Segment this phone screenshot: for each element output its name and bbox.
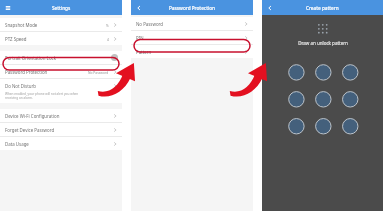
button[interactable]: Pattern <box>131 45 253 58</box>
button[interactable]: Back <box>262 0 277 15</box>
button[interactable]: PIN <box>131 31 253 44</box>
staticText: Portrait Orientation Lock <box>5 55 57 61</box>
button[interactable]: Do Not Disturb <box>0 79 122 92</box>
staticText: 4 <box>107 37 109 41</box>
button[interactable]: Back <box>131 0 146 15</box>
button[interactable]: No Password <box>131 17 253 30</box>
staticText: When enabled, your phone will not alert … <box>5 92 79 100</box>
staticText: Device Wi-Fi Configuration <box>5 113 60 119</box>
staticText: Settings <box>52 5 71 11</box>
staticText: Data Usage <box>5 141 29 147</box>
button[interactable]: Forget Device Password <box>0 123 122 136</box>
staticText: Forget Device Password <box>5 127 55 133</box>
button[interactable]: Portrait Orientation Lock <box>0 51 122 64</box>
staticText: Draw an unlock pattern <box>298 40 348 46</box>
button[interactable]: Pattern grid <box>288 64 358 134</box>
staticText: Create pattern <box>306 5 339 11</box>
button[interactable]: Password Protection <box>0 65 122 78</box>
staticText: Password Protection <box>5 69 48 75</box>
button[interactable]: Menu <box>0 0 15 15</box>
staticText: No Password <box>88 70 109 74</box>
staticText: No Password <box>136 21 163 27</box>
staticText: Snapshot Mode <box>5 22 38 28</box>
staticText: % <box>106 23 109 27</box>
button[interactable]: Snapshot Mode <box>0 18 122 31</box>
staticText: PTZ Speed <box>5 36 27 42</box>
button[interactable]: PTZ Speed <box>0 32 122 45</box>
button[interactable]: Device Wi-Fi Configuration <box>0 109 122 122</box>
staticText: Password Protection <box>169 5 216 11</box>
staticText: Pattern <box>136 49 152 55</box>
button[interactable]: Data Usage <box>0 137 122 150</box>
staticText: PIN <box>136 35 144 41</box>
staticText: Do Not Disturb <box>5 83 36 89</box>
